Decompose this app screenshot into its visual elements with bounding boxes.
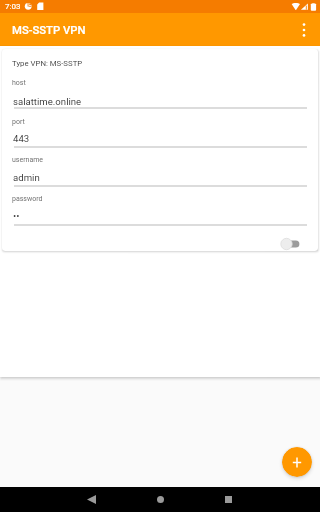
- staticText: salattime.online: [13, 96, 82, 107]
- staticText: username: [12, 156, 44, 164]
- staticText: 443: [13, 133, 30, 144]
- staticText: port: [12, 118, 25, 126]
- staticText: ••: [13, 210, 20, 221]
- staticText: 7:03: [5, 2, 21, 11]
- staticText: password: [12, 195, 43, 203]
- button[interactable]: Enable VPN: [278, 231, 314, 251]
- button[interactable]: Home: [140, 487, 180, 512]
- button[interactable]: More options: [287, 13, 320, 46]
- button[interactable]: Recents: [208, 487, 248, 512]
- button[interactable]: Add: [282, 447, 312, 477]
- staticText: Type VPN: MS-SSTP: [12, 59, 83, 68]
- staticText: host: [12, 79, 26, 87]
- staticText: MS-SSTP VPN: [12, 24, 86, 37]
- button[interactable]: Back: [71, 487, 111, 512]
- staticText: admin: [13, 172, 40, 183]
